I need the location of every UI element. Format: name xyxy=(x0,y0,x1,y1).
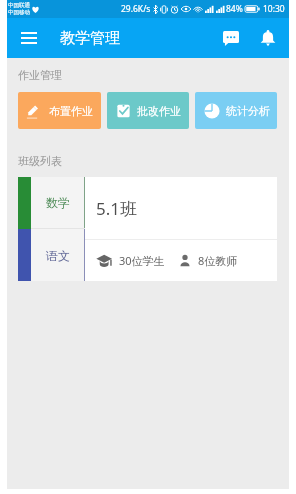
staticText: 布置作业 xyxy=(49,104,93,118)
staticText: 批改作业 xyxy=(137,104,181,118)
button[interactable]: 统计分析 xyxy=(195,92,277,129)
staticText: 10:30 xyxy=(263,3,285,15)
staticText: 29.6K/s xyxy=(121,3,151,15)
staticText: 数学 xyxy=(46,195,70,210)
staticText: 5.1班 xyxy=(96,197,138,220)
staticText: 班级列表 xyxy=(18,154,62,168)
staticText: 教学管理 xyxy=(60,29,120,48)
button[interactable]: Notifications xyxy=(249,18,286,58)
staticText: 30位学生 xyxy=(119,253,165,268)
staticText: 84% xyxy=(226,3,243,15)
staticText: 中国移动 xyxy=(8,9,30,16)
staticText: 语文 xyxy=(46,248,70,263)
staticText: 作业管理 xyxy=(18,68,62,82)
button[interactable]: 批改作业 xyxy=(107,92,189,129)
staticText: 中国联通 xyxy=(8,2,30,9)
staticText: 8位教师 xyxy=(198,253,238,268)
staticText: 统计分析 xyxy=(226,104,270,118)
button[interactable]: Messages xyxy=(212,18,249,58)
button[interactable]: Menu xyxy=(7,18,50,58)
button[interactable]: 布置作业 xyxy=(18,92,101,129)
